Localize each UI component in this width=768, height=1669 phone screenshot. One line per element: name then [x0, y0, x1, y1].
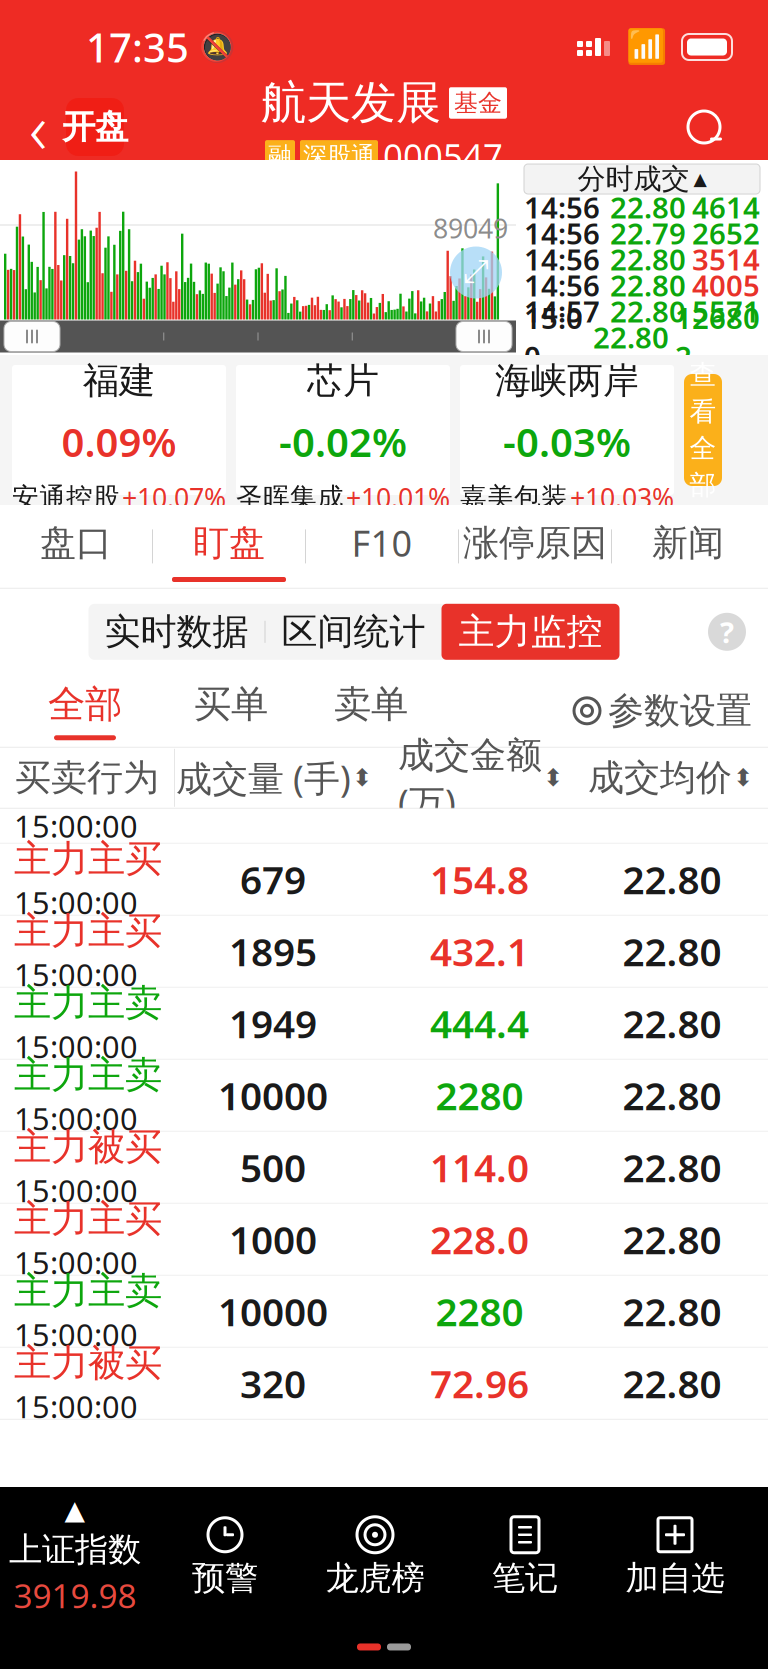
staticText: 主力被买 [14, 1340, 162, 1386]
button[interactable]: 10000 [0, 1276, 768, 1348]
button[interactable]: 全部 [48, 681, 122, 740]
staticText: 卖单 [334, 681, 408, 727]
staticText: 15:00:00 [14, 1314, 138, 1355]
button[interactable]: 海峡两岸 [460, 365, 674, 495]
button[interactable]: 搜索 [674, 97, 734, 157]
button[interactable]: 区间统计 [265, 604, 441, 660]
button[interactable]: 500 [0, 1132, 768, 1204]
button[interactable]: 加自选 [600, 1514, 750, 1599]
staticText: 主力主买 [14, 908, 162, 954]
staticText: 22.80 [593, 317, 669, 356]
staticText: 22.80 [610, 239, 686, 278]
staticText: 上证指数 [9, 1529, 141, 1570]
staticText: 15:00:00 [14, 954, 138, 995]
button[interactable]: 帮助 [708, 612, 746, 651]
button[interactable]: 涨停原因 [459, 507, 611, 586]
button[interactable]: Expand chart [450, 246, 502, 298]
button[interactable]: 新闻 [612, 507, 764, 586]
button[interactable]: 679 [0, 844, 768, 916]
staticText: 22.79 [610, 213, 686, 252]
button[interactable]: 320 [0, 1348, 768, 1420]
button[interactable]: 龙虎榜 [300, 1514, 450, 1599]
staticText: 15:00:00 [14, 1242, 138, 1283]
staticText: 福建 [83, 359, 155, 403]
staticText: ⬍ [543, 764, 563, 791]
staticText: 15:00:00 [14, 1170, 138, 1211]
staticText: 2280 [435, 1070, 523, 1121]
staticText: 主力主卖 [14, 980, 162, 1026]
staticText: 17:35 [86, 20, 189, 73]
staticText: 14:56 [524, 187, 600, 226]
staticText: 4614 [692, 187, 760, 226]
staticText: 涨停原因 [463, 521, 607, 565]
staticText: 14:56 [524, 265, 600, 304]
staticText: 15:00:00 [14, 1386, 138, 1427]
staticText: 新闻 [652, 521, 724, 565]
staticText: 15:00:00 [14, 882, 138, 923]
staticText: ? [720, 612, 734, 651]
staticText: 228.0 [430, 1214, 529, 1265]
staticText: 海峡两岸 [495, 359, 639, 403]
staticText: 基金 [454, 88, 502, 118]
staticText: 1895 [229, 926, 317, 977]
staticText: 笔记 [492, 1558, 558, 1599]
staticText: 22.80 [622, 1214, 721, 1265]
staticText: 芯片 [307, 359, 379, 403]
button[interactable]: 参数设置 [572, 689, 752, 733]
button[interactable]: 芯片 [236, 365, 450, 495]
staticText: ‹ [29, 81, 47, 173]
button[interactable]: 买单 [194, 681, 268, 740]
button[interactable]: 笔记 [450, 1514, 600, 1599]
button[interactable]: F10 [306, 505, 458, 588]
staticText: 1949 [229, 998, 317, 1049]
button[interactable]: 主力监控 [441, 604, 619, 660]
staticText: ⬍ [352, 764, 372, 791]
button[interactable]: 卖单 [334, 681, 408, 740]
staticText: 买单 [194, 681, 268, 727]
staticText: 2652 [692, 213, 760, 252]
staticText: 14:56 [524, 239, 600, 278]
button[interactable]: 预警 [150, 1514, 300, 1599]
staticText: 22.80 [622, 1286, 721, 1337]
button[interactable]: ▲ [0, 1495, 150, 1617]
button[interactable]: 1949 [0, 988, 768, 1060]
button[interactable]: 分时成交 [516, 160, 768, 194]
button[interactable]: 开盘 [62, 98, 128, 156]
staticText: 主力主卖 [14, 1268, 162, 1314]
staticText: 看 [689, 395, 716, 428]
staticText: 嘉美包装 [460, 481, 568, 514]
staticText: 开盘 [62, 106, 128, 147]
staticText: 查 [689, 358, 716, 391]
staticText: 22.80 [622, 1358, 721, 1409]
staticText: +10.01% [346, 480, 450, 515]
staticText: 深股通 [303, 141, 375, 171]
staticText: 15:00 [524, 298, 583, 376]
button[interactable]: 查 [684, 374, 722, 486]
button[interactable]: 1000 [0, 1204, 768, 1276]
staticText: 📶 [626, 28, 668, 66]
button[interactable]: 盘口 [0, 507, 152, 586]
staticText: 龙虎榜 [325, 1558, 424, 1599]
button[interactable]: 福建 [12, 365, 226, 495]
button[interactable]: 实时数据 [88, 604, 264, 660]
staticText: 10000 [218, 1286, 328, 1337]
staticText: 区间统计 [281, 610, 425, 654]
staticText: 部 [689, 469, 716, 502]
staticText: 22.80 [610, 291, 686, 330]
button[interactable]: 1895 [0, 916, 768, 988]
button[interactable]: 10000 [0, 1060, 768, 1132]
staticText: ▲ [64, 1495, 85, 1525]
staticText: 5571 [692, 291, 760, 330]
staticText: 买卖行为 [15, 756, 159, 800]
button[interactable]: 盯盘 [153, 507, 305, 586]
staticText: F10 [351, 519, 412, 567]
staticText: ⤢ [463, 257, 489, 288]
staticText: 154.8 [430, 854, 529, 905]
staticText: 参数设置 [608, 689, 752, 733]
staticText: ▲ [693, 169, 706, 189]
button[interactable]: 返回 [18, 97, 58, 157]
staticText: 10000 [218, 1070, 328, 1121]
staticText: 分时成交 [577, 162, 689, 196]
staticText: 实时数据 [104, 610, 248, 654]
staticText: -0.02% [279, 415, 407, 468]
